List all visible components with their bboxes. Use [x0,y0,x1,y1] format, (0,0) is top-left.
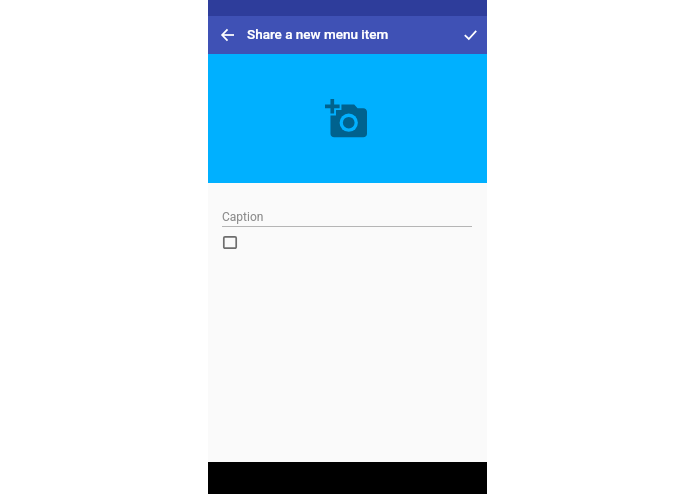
button[interactable]: Done [456,21,484,49]
staticText: Caption [222,210,264,224]
staticText: Share a new menu item [247,26,389,42]
button[interactable]: Add a photo [208,54,487,183]
button[interactable]: Checkbox, unchecked [223,236,237,249]
button[interactable]: Navigate up [214,21,242,49]
